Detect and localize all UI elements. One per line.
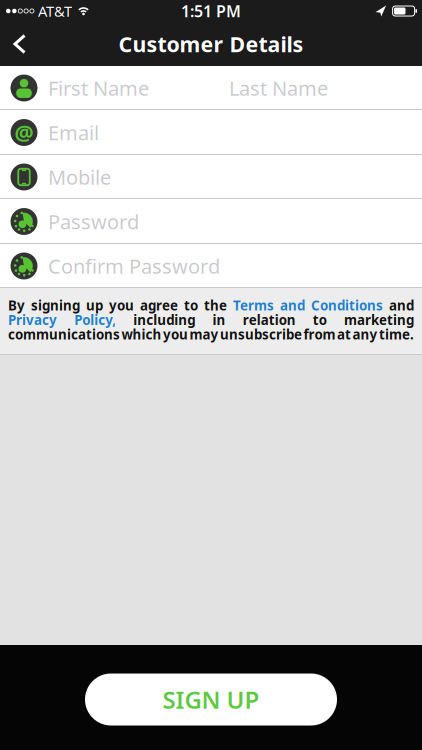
button[interactable]: Mobile xyxy=(0,155,422,199)
staticText: Last Name xyxy=(229,75,328,101)
button[interactable]: Confirm Password xyxy=(0,244,422,288)
staticText: up xyxy=(86,296,103,314)
staticText: signing xyxy=(31,296,80,314)
staticText: 1:51 PM xyxy=(181,0,241,22)
button[interactable]: SIGN UP xyxy=(85,673,337,725)
staticText: By xyxy=(8,296,25,314)
staticText: and xyxy=(280,296,305,314)
staticText: First Name xyxy=(48,75,149,101)
staticText: Policy, xyxy=(74,311,116,329)
staticText: you xyxy=(163,325,188,343)
staticText: to xyxy=(313,311,327,329)
staticText: from xyxy=(303,325,335,343)
button[interactable]: Conditions xyxy=(311,296,383,314)
staticText: unsubscribe xyxy=(220,325,302,343)
staticText: relation xyxy=(243,311,296,329)
staticText: Conditions xyxy=(311,296,383,314)
staticText: Password xyxy=(48,208,139,235)
button[interactable]: First Name xyxy=(0,66,422,110)
staticText: marketing xyxy=(344,311,414,329)
staticText: at xyxy=(337,325,351,343)
staticText: to xyxy=(184,296,198,314)
staticText: Customer Details xyxy=(118,30,303,58)
button[interactable]: @ xyxy=(0,110,422,155)
staticText: and xyxy=(389,296,414,314)
staticText: any xyxy=(352,325,377,343)
staticText: Confirm Password xyxy=(48,253,220,279)
staticText: in xyxy=(212,311,225,329)
staticText: the xyxy=(204,296,227,314)
staticText: you xyxy=(109,296,134,314)
staticText: time. xyxy=(379,325,414,343)
button[interactable]: Password xyxy=(0,199,422,244)
staticText: which xyxy=(121,325,161,343)
staticText: Mobile xyxy=(48,164,111,190)
staticText: Privacy xyxy=(8,311,57,329)
button[interactable]: Terms xyxy=(233,296,274,314)
staticText: including xyxy=(133,311,195,329)
button[interactable]: Policy, xyxy=(74,311,116,329)
staticText: communications xyxy=(8,325,120,343)
staticText: @ xyxy=(14,118,33,147)
staticText: Email xyxy=(48,119,99,146)
staticText: Terms xyxy=(233,296,274,314)
button[interactable]: Back xyxy=(0,25,28,62)
staticText: may xyxy=(189,325,218,343)
button[interactable]: and xyxy=(280,296,305,314)
staticText: agree xyxy=(140,296,178,314)
button[interactable]: Privacy xyxy=(8,311,57,329)
staticText: AT&T xyxy=(38,1,72,21)
staticText: SIGN UP xyxy=(162,684,259,715)
